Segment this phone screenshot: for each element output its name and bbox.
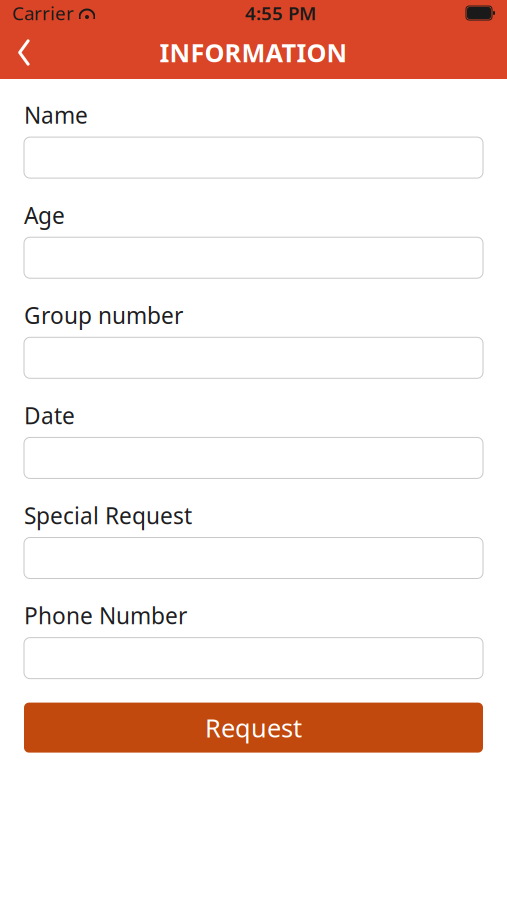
staticText: 4:55 PM [245, 1, 316, 25]
staticText: INFORMATION [159, 36, 347, 69]
staticText: Name [24, 100, 88, 130]
button[interactable]: Request [24, 703, 483, 753]
button[interactable]: Back [0, 26, 48, 79]
staticText: Phone Number [24, 600, 187, 631]
staticText: Date [24, 400, 75, 430]
staticText: Special Request [24, 500, 192, 530]
staticText: Carrier [12, 1, 74, 25]
staticText: Group number [24, 300, 183, 330]
staticText: Age [24, 200, 65, 230]
staticText: Request [205, 711, 302, 744]
